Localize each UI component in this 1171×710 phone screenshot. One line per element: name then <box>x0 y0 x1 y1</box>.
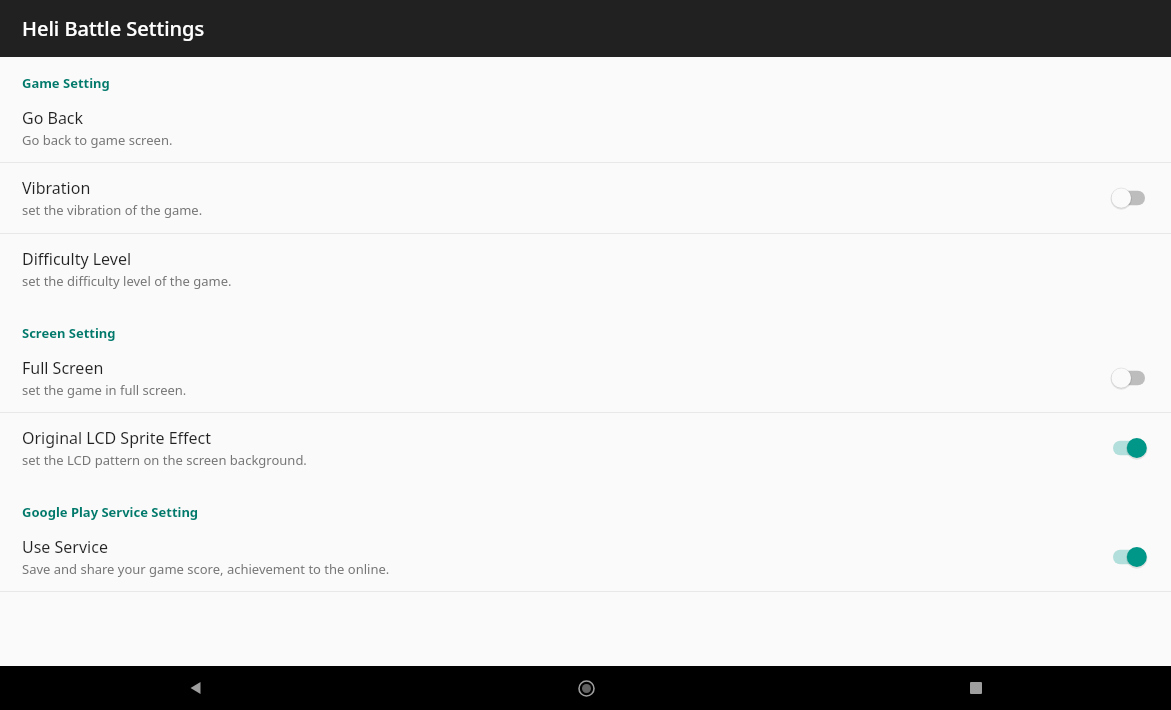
staticText: Save and share your game score, achievem… <box>22 560 390 578</box>
staticText: set the vibration of the game. <box>22 201 203 219</box>
button[interactable]: Full Screen <box>0 346 1171 412</box>
button[interactable]: Vibration <box>0 163 1171 233</box>
staticText: Use Service <box>22 536 108 558</box>
staticText: Go back to game screen. <box>22 131 173 149</box>
button[interactable]: Difficulty Level <box>0 234 1171 304</box>
staticText: Vibration <box>22 177 91 199</box>
button[interactable]: Use Service <box>0 525 1171 591</box>
button[interactable]: Original LCD sprite effect toggle <box>1109 435 1149 461</box>
button[interactable]: Back <box>0 666 391 710</box>
button[interactable]: Use service toggle <box>1109 544 1149 570</box>
staticText: Screen Setting <box>22 324 1171 342</box>
button[interactable]: Go Back <box>0 96 1171 162</box>
staticText: Game Setting <box>22 74 1171 92</box>
staticText: Difficulty Level <box>22 248 132 270</box>
button[interactable]: Full screen toggle <box>1109 365 1149 391</box>
staticText: Google Play Service Setting <box>22 503 1171 521</box>
staticText: set the game in full screen. <box>22 381 187 399</box>
button[interactable]: Recent apps <box>781 666 1171 710</box>
staticText: Original LCD Sprite Effect <box>22 427 212 449</box>
staticText: Full Screen <box>22 357 104 379</box>
button[interactable]: Home <box>391 666 781 710</box>
staticText: set the LCD pattern on the screen backgr… <box>22 451 307 469</box>
staticText: set the difficulty level of the game. <box>22 272 232 290</box>
staticText: Heli Battle Settings <box>22 15 205 42</box>
staticText: Go Back <box>22 107 84 129</box>
button[interactable]: Original LCD Sprite Effect <box>0 413 1171 483</box>
button[interactable]: Vibration toggle <box>1109 185 1149 211</box>
